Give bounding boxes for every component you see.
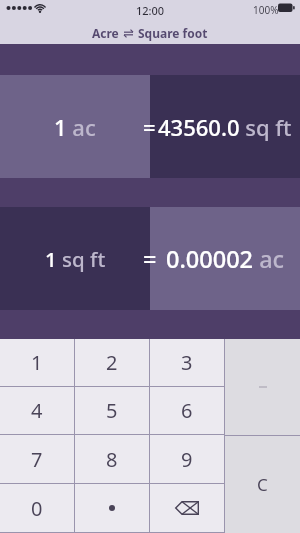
button[interactable]: 7 <box>0 435 74 483</box>
button[interactable]: C <box>225 436 300 533</box>
button[interactable]: 8 <box>75 435 149 483</box>
staticText: 9 <box>181 446 193 473</box>
button[interactable]: 5 <box>75 387 149 434</box>
staticText: = <box>143 243 157 275</box>
staticText: 2 <box>106 349 118 376</box>
button[interactable]: 9 <box>150 435 224 483</box>
staticText: 4 <box>31 397 43 424</box>
staticText: C <box>257 473 268 496</box>
button[interactable]: 1 <box>0 339 74 386</box>
staticText: 0 <box>31 495 43 522</box>
staticText: 1 <box>31 349 43 376</box>
staticText: 100% <box>253 3 279 17</box>
other: Backspace <box>175 501 199 515</box>
button[interactable]: 0 <box>0 484 74 532</box>
staticText: 1 sq ft <box>45 245 106 273</box>
button[interactable]: 4 <box>0 387 74 434</box>
staticText: 7 <box>31 446 43 473</box>
staticText: 0.00002 ac <box>166 243 285 275</box>
staticText: 5 <box>106 397 118 424</box>
button[interactable]: 3 <box>150 339 224 386</box>
button[interactable] <box>150 75 300 178</box>
staticText: 8 <box>106 446 118 473</box>
button[interactable] <box>150 207 300 310</box>
staticText: = <box>143 112 156 142</box>
button[interactable] <box>0 75 150 178</box>
button[interactable] <box>0 207 150 310</box>
button[interactable]: Backspace <box>150 484 224 532</box>
staticText: 1 ac <box>54 112 96 142</box>
button[interactable]: 6 <box>150 387 224 434</box>
staticText: 43560.0 sq ft <box>158 112 292 142</box>
staticText: 12:00 <box>136 3 165 18</box>
staticText: Square foot <box>138 25 208 41</box>
staticText: Acre <box>92 25 119 41</box>
staticText: 6 <box>181 397 193 424</box>
staticText: 3 <box>181 349 193 376</box>
button[interactable]: 2 <box>75 339 149 386</box>
button[interactable] <box>75 484 149 532</box>
